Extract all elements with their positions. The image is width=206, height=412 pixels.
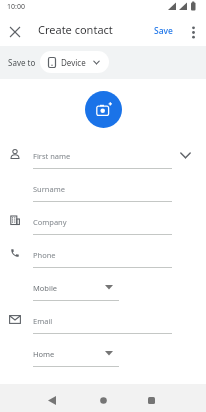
staticText: Home (33, 349, 55, 359)
button[interactable] (143, 392, 159, 408)
staticText: Phone (33, 250, 56, 260)
button[interactable] (85, 91, 122, 128)
staticText: Email (33, 316, 53, 326)
button[interactable] (44, 392, 60, 408)
staticText: Company (33, 217, 67, 227)
staticText: First name (33, 151, 71, 161)
staticText: Surname (33, 184, 65, 194)
button[interactable]: Company (0, 212, 206, 235)
button[interactable]: Home (0, 344, 119, 367)
button[interactable]: Save (154, 25, 173, 37)
staticText: Save to (8, 57, 36, 68)
button[interactable]: Mobile (0, 278, 119, 301)
button[interactable]: Email (0, 311, 206, 334)
staticText: 10:00 (7, 2, 25, 12)
button[interactable] (183, 22, 203, 42)
staticText: Mobile (33, 283, 58, 293)
staticText: Create contact (38, 22, 113, 37)
button[interactable] (5, 22, 25, 42)
button[interactable]: First name (0, 146, 206, 169)
button[interactable]: Device (40, 51, 109, 73)
button[interactable] (95, 392, 111, 408)
button[interactable]: Phone (0, 245, 206, 268)
staticText: Device (61, 57, 86, 68)
button[interactable]: Surname (0, 179, 206, 202)
